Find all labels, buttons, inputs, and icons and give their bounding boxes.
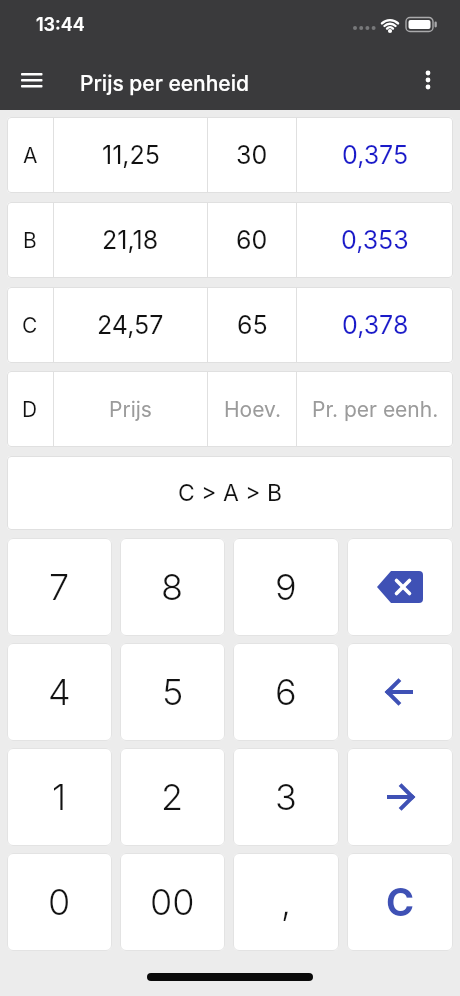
button[interactable]: B [7,202,53,278]
staticText: 7 [49,565,70,609]
staticText: Prijs [109,397,152,422]
button[interactable]: 60 [208,202,296,278]
staticText: 8 [161,565,184,609]
staticText: C [386,879,415,925]
staticText: , [281,880,292,924]
staticText: D [22,397,38,422]
staticText: Hoev. [224,397,281,422]
button[interactable]: Pr. per eenh. [297,371,453,447]
staticText: 9 [275,565,297,609]
staticText: 2 [161,775,184,819]
staticText: 0,353 [341,225,409,255]
staticText: A [23,143,38,168]
staticText: 13:44 [36,14,85,36]
staticText: 5 [162,670,184,714]
button[interactable] [404,56,452,104]
button[interactable]: 8 [120,538,225,636]
staticText: 30 [236,140,268,170]
button[interactable] [347,748,453,846]
staticText: 24,57 [97,310,164,340]
button[interactable]: A [7,117,53,193]
button[interactable]: C > A > B [7,456,453,530]
staticText: 3 [275,775,297,819]
staticText: 6 [275,670,297,714]
staticText: 65 [237,310,268,340]
staticText: 0,378 [342,310,409,340]
button[interactable]: C [7,287,53,363]
button[interactable]: 7 [7,538,112,636]
button[interactable]: Hoev. [208,371,296,447]
staticText: Prijs per eenheid [80,71,249,96]
button[interactable] [347,643,453,741]
button[interactable]: 6 [233,643,339,741]
button[interactable]: Prijs [54,371,207,447]
button[interactable] [8,56,56,104]
button[interactable]: 4 [7,643,112,741]
button[interactable]: 0,353 [297,202,453,278]
button[interactable]: D [7,371,53,447]
button[interactable]: C [347,853,453,951]
button[interactable]: 5 [120,643,225,741]
button[interactable]: 9 [233,538,339,636]
button[interactable]: 24,57 [54,287,207,363]
staticText: 1 [52,775,67,819]
staticText: 4 [48,670,71,714]
button[interactable]: 00 [120,853,225,951]
button[interactable]: 65 [208,287,296,363]
button[interactable]: 2 [120,748,225,846]
button[interactable]: 30 [208,117,296,193]
button[interactable] [347,538,453,636]
staticText: 00 [150,880,195,924]
button[interactable]: 11,25 [54,117,207,193]
button[interactable]: , [233,853,339,951]
staticText: C [22,313,38,338]
button[interactable]: 0,378 [297,287,453,363]
button[interactable]: 1 [7,748,112,846]
button[interactable]: 21,18 [54,202,207,278]
button[interactable]: 0,375 [297,117,453,193]
staticText: 60 [236,225,268,255]
staticText: 0,375 [342,140,409,170]
staticText: 11,25 [102,140,160,170]
staticText: 0 [48,880,71,924]
staticText: 21,18 [102,225,159,255]
button[interactable]: 3 [233,748,339,846]
staticText: B [23,228,37,253]
button[interactable]: 0 [7,853,112,951]
staticText: C > A > B [178,479,283,507]
staticText: Pr. per eenh. [312,397,439,422]
